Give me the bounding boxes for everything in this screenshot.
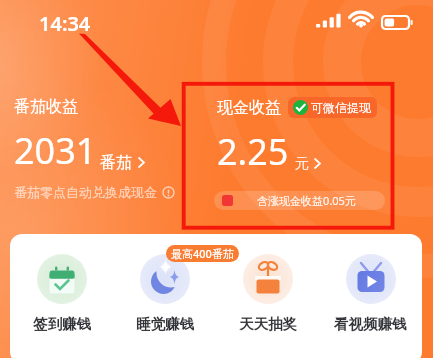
staticText: 元 bbox=[295, 155, 309, 173]
staticText: 14:34 bbox=[39, 10, 91, 37]
button[interactable]: 含涨现金收益0.05元 bbox=[214, 191, 385, 210]
button[interactable]: 现金收益 bbox=[217, 97, 388, 210]
staticText: 现金收益 bbox=[217, 98, 281, 118]
staticText: 睡觉赚钱 bbox=[136, 315, 194, 333]
button[interactable]: 睡觉赚钱 bbox=[113, 254, 216, 333]
staticText: 含涨现金收益0.05元 bbox=[233, 193, 380, 208]
staticText: 番茄零点自动兑换成现金 bbox=[14, 184, 157, 200]
button[interactable]: 天天抽奖 bbox=[216, 254, 319, 333]
staticText: 签到赚钱 bbox=[33, 315, 91, 333]
button[interactable]: 番茄收益 bbox=[14, 97, 175, 200]
button[interactable]: 签到赚钱 bbox=[10, 254, 113, 333]
staticText: 看视频赚钱 bbox=[334, 315, 407, 333]
staticText: 可微信提现 bbox=[311, 100, 371, 115]
staticText: 2.25 bbox=[217, 127, 289, 176]
button[interactable]: 看视频赚钱 bbox=[319, 254, 422, 333]
staticText: 番茄 bbox=[100, 153, 132, 173]
button[interactable]: 可微信提现 bbox=[293, 97, 371, 118]
staticText: 番茄收益 bbox=[14, 97, 78, 117]
staticText: 2031 bbox=[14, 126, 97, 175]
staticText: 天天抽奖 bbox=[239, 315, 297, 333]
staticText: 最高400番茄 bbox=[171, 246, 234, 261]
